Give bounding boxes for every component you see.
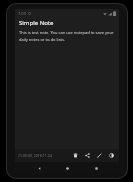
button[interactable]: Edit [95, 151, 104, 160]
staticText: 7:00 [18, 11, 26, 16]
button[interactable]: Toggle theme [107, 151, 116, 160]
staticText: This is test note. You can use notepad t… [19, 30, 115, 42]
button[interactable]: Delete [71, 151, 80, 160]
button[interactable]: Home [62, 163, 72, 173]
staticText: 21:00:00, 2018-11-04 [18, 153, 53, 158]
button[interactable]: Back [34, 163, 44, 173]
button[interactable]: Share [83, 151, 92, 160]
button[interactable]: Recent apps [91, 163, 101, 173]
staticText: Simple Note [19, 19, 54, 27]
